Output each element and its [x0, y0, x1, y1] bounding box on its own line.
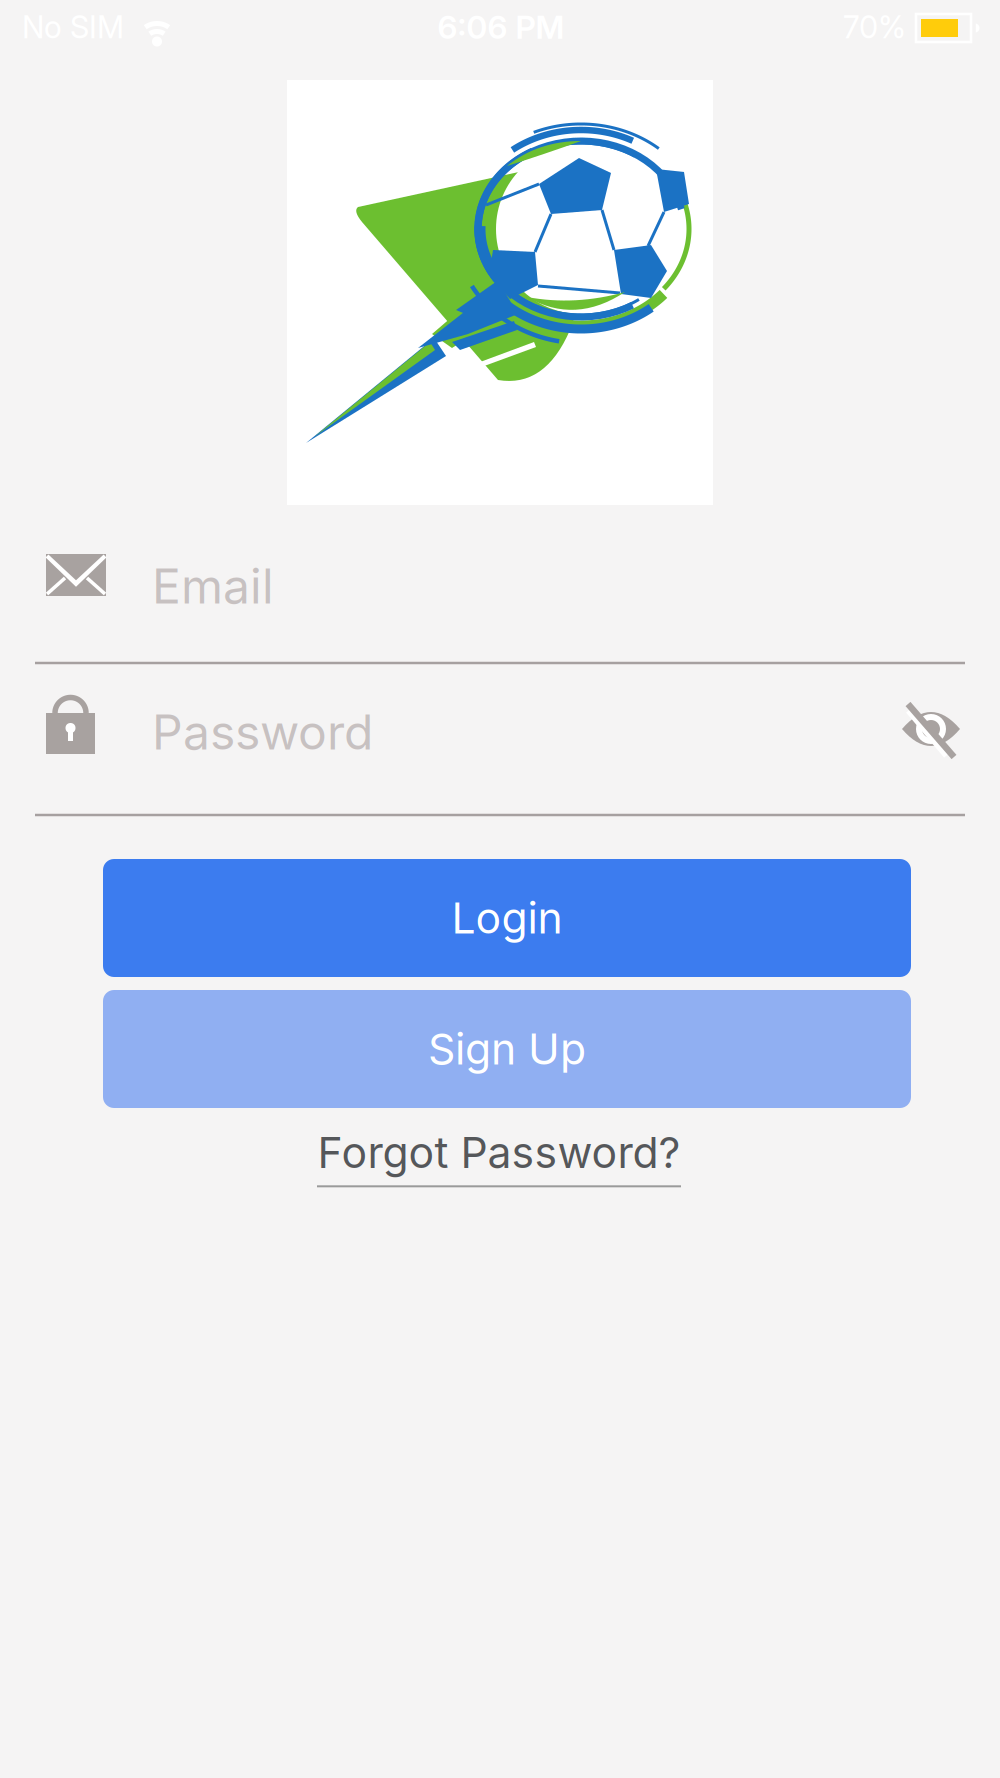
- staticText: No SIM: [22, 8, 124, 45]
- button[interactable]: Show password: [896, 697, 966, 761]
- staticText: Forgot Password?: [317, 1127, 680, 1178]
- staticText: 6:06 PM: [437, 8, 564, 46]
- button[interactable]: Login: [103, 859, 911, 977]
- staticText: Login: [451, 892, 562, 944]
- staticText: Sign Up: [428, 1023, 586, 1075]
- button[interactable]: Sign Up: [103, 990, 911, 1108]
- staticText: Email: [152, 557, 274, 615]
- button[interactable]: Forgot Password?: [317, 1127, 681, 1187]
- staticText: 70%: [843, 8, 906, 45]
- staticText: Password: [152, 703, 373, 761]
